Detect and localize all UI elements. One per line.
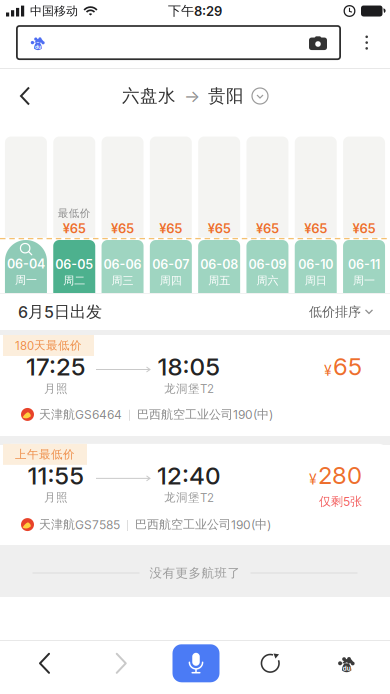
staticText: 周二 bbox=[63, 274, 85, 287]
staticText: du bbox=[35, 44, 41, 50]
button[interactable]: 天津航GS6464 bbox=[3, 335, 387, 436]
staticText: 下午8:29 bbox=[168, 3, 222, 19]
staticText: ¥ bbox=[309, 471, 317, 488]
button[interactable]: 搜索 bbox=[16, 25, 341, 60]
staticText: ¥65 bbox=[353, 221, 376, 236]
button[interactable]: 百度首页 bbox=[321, 642, 370, 685]
staticText: 巴西航空工业公司190(中) bbox=[137, 407, 273, 422]
staticText: 17:25 bbox=[26, 352, 86, 381]
button[interactable]: 后退 bbox=[19, 641, 70, 686]
button[interactable]: 06-08 周五 bbox=[198, 240, 240, 293]
staticText: ¥ bbox=[324, 362, 332, 379]
staticText: 06-09 bbox=[248, 257, 286, 272]
staticText: 12:40 bbox=[157, 461, 221, 490]
button[interactable]: 菜单 bbox=[365, 35, 368, 50]
staticText: → bbox=[184, 86, 200, 106]
button[interactable]: 06-10 周日 bbox=[295, 240, 337, 293]
staticText: 周一 bbox=[353, 274, 375, 287]
staticText: 周六 bbox=[256, 274, 278, 287]
button[interactable]: 拍照搜索 bbox=[309, 35, 327, 50]
staticText: 月照 bbox=[44, 490, 68, 505]
staticText: 06-10 bbox=[298, 257, 333, 272]
staticText: 天津航GS7585 bbox=[39, 517, 120, 532]
staticText: ¥65 bbox=[208, 221, 231, 236]
staticText: 周日 bbox=[305, 274, 327, 287]
staticText: 仅剩5张 bbox=[319, 494, 362, 509]
button[interactable]: 语音搜索 bbox=[172, 644, 219, 682]
button[interactable]: 返回 bbox=[0, 76, 31, 115]
button[interactable]: 天津航GS7585 bbox=[3, 445, 387, 545]
staticText: 06-05 bbox=[55, 257, 93, 272]
staticText: 龙洞堡T2 bbox=[164, 490, 214, 505]
staticText: 6月5日出发 bbox=[18, 302, 102, 322]
staticText: 65 bbox=[333, 352, 362, 381]
staticText: 周一 bbox=[15, 273, 37, 287]
button[interactable]: 06-07 周四 bbox=[150, 240, 192, 293]
staticText: 巴西航空工业公司190(中) bbox=[135, 517, 271, 532]
staticText: ｜ bbox=[122, 518, 133, 531]
button[interactable]: 06-06 周三 bbox=[101, 240, 143, 293]
staticText: ¥65 bbox=[63, 221, 86, 236]
staticText: 低价排序 bbox=[309, 304, 361, 320]
staticText: ¥65 bbox=[111, 221, 134, 236]
button[interactable]: 06-11 周一 bbox=[343, 240, 385, 293]
button[interactable]: 06-09 周六 bbox=[246, 240, 288, 293]
staticText: ¥65 bbox=[159, 221, 182, 236]
staticText: du bbox=[343, 665, 351, 672]
staticText: 天津航GS6464 bbox=[39, 407, 122, 422]
button[interactable]: 06-05 周二 bbox=[53, 240, 95, 293]
staticText: ¥65 bbox=[304, 221, 327, 236]
staticText: 上午最低价 bbox=[15, 447, 75, 462]
staticText: 180天最低价 bbox=[15, 338, 82, 353]
button[interactable]: 低价排序 bbox=[309, 304, 390, 320]
button[interactable]: 06-04 周一 bbox=[5, 240, 47, 293]
staticText: 11:55 bbox=[27, 461, 84, 490]
staticText: 周三 bbox=[111, 274, 133, 287]
button[interactable]: 更改航线 bbox=[122, 85, 268, 107]
staticText: 六盘水 bbox=[122, 85, 176, 107]
staticText: ｜ bbox=[124, 407, 135, 421]
button[interactable]: 刷新 bbox=[245, 641, 295, 685]
staticText: ¥65 bbox=[256, 221, 279, 236]
staticText: 贵阳 bbox=[208, 85, 244, 107]
staticText: 月照 bbox=[44, 381, 68, 396]
staticText: 中国移动 bbox=[30, 3, 78, 18]
staticText: 18:05 bbox=[157, 352, 220, 381]
staticText: 06-06 bbox=[103, 257, 141, 272]
staticText: 06-07 bbox=[152, 257, 189, 272]
staticText: 周四 bbox=[160, 274, 182, 287]
button[interactable]: 前进 bbox=[96, 641, 147, 686]
staticText: 龙洞堡T2 bbox=[164, 381, 214, 396]
staticText: 280 bbox=[318, 461, 362, 490]
staticText: 周五 bbox=[208, 274, 230, 287]
staticText: 06-08 bbox=[200, 257, 238, 272]
staticText: 最低价 bbox=[58, 206, 91, 220]
staticText: 没有更多航班了 bbox=[149, 565, 240, 581]
staticText: 06-11 bbox=[348, 257, 380, 272]
staticText: 06-04 bbox=[7, 256, 45, 272]
